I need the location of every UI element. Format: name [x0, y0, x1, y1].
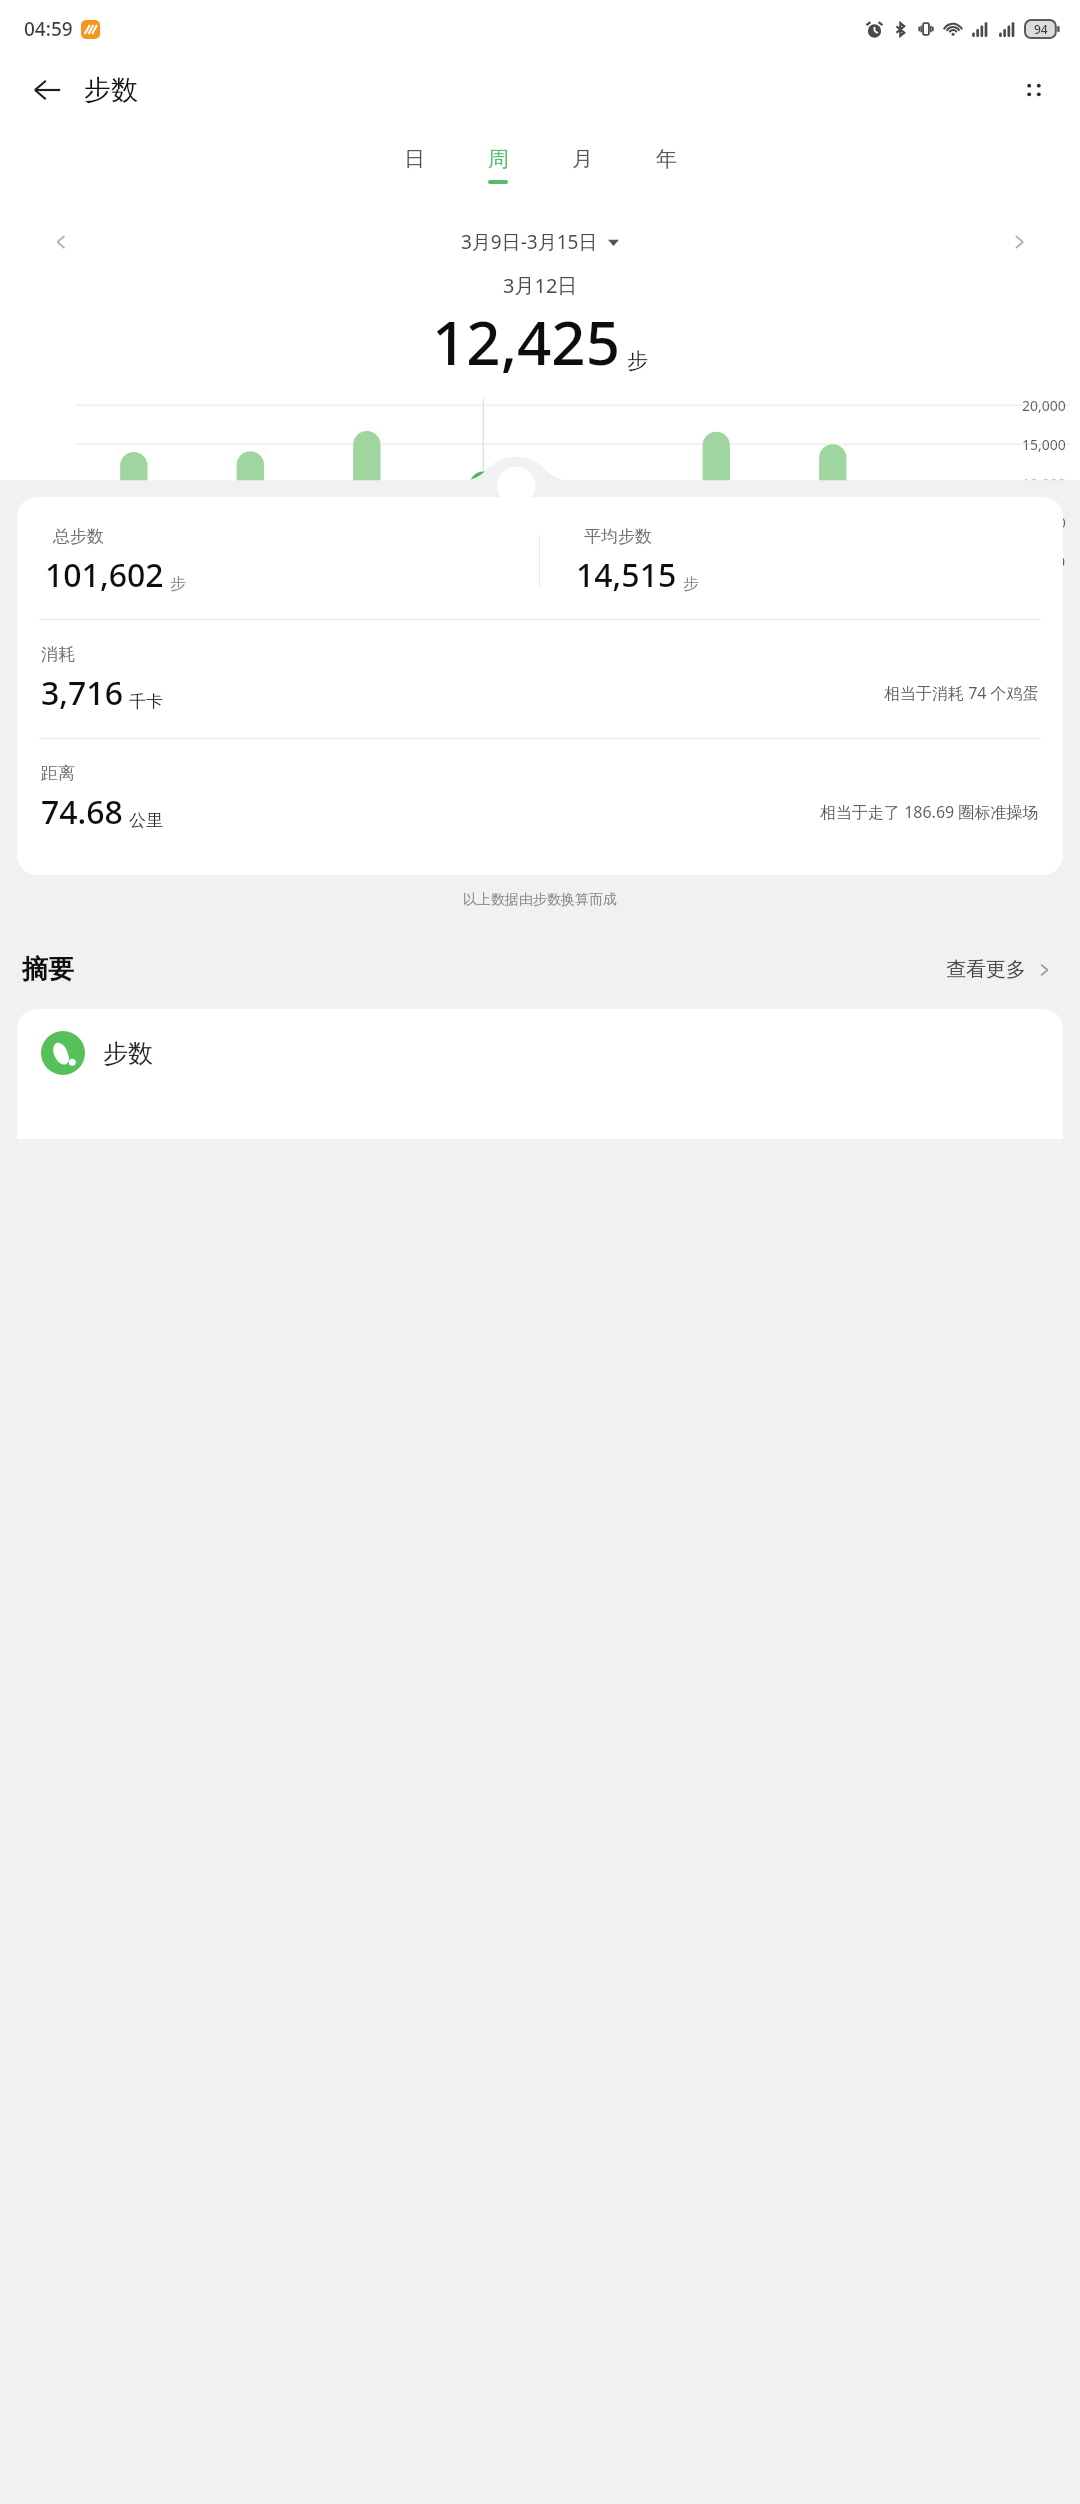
- staticText: 步数: [103, 1038, 153, 1069]
- button[interactable]: Previous week: [40, 221, 82, 263]
- staticText: 公里: [129, 810, 163, 831]
- staticText: 14,515: [576, 553, 677, 597]
- staticText: 相当于消耗 74 个鸡蛋: [884, 682, 1039, 704]
- button[interactable]: 步数: [17, 1009, 1063, 1139]
- staticText: 步: [170, 574, 186, 594]
- button[interactable]: 查看更多: [942, 949, 1058, 990]
- staticText: 3,716: [41, 671, 123, 715]
- staticText: 5,000: [1030, 513, 1066, 532]
- staticText: 千卡: [129, 691, 163, 712]
- button[interactable]: 月: [553, 142, 611, 188]
- staticText: 年: [656, 146, 677, 172]
- staticText: 步: [683, 574, 699, 594]
- button[interactable]: 周: [469, 142, 527, 188]
- button[interactable]: 年: [637, 142, 695, 188]
- button[interactable]: 日: [385, 142, 443, 188]
- button[interactable]: 3月9日-3月15日: [451, 224, 629, 260]
- staticText: 周五: [604, 577, 634, 596]
- staticText: 10,000: [1022, 474, 1066, 493]
- staticText: 相当于走了 186.69 圈标准操场: [820, 801, 1039, 823]
- button[interactable]: 距离: [17, 739, 1063, 857]
- staticText: 3月9日-3月15日: [461, 229, 598, 255]
- staticText: 94: [1034, 21, 1048, 37]
- staticText: 0: [1057, 552, 1066, 571]
- staticText: 04:59: [24, 16, 73, 42]
- staticText: 总步数: [53, 526, 104, 547]
- staticText: 步: [627, 348, 648, 374]
- staticText: 74.68: [41, 790, 123, 834]
- staticText: 12,425: [432, 301, 620, 383]
- staticText: 3月12日: [503, 272, 578, 299]
- button[interactable]: More options: [1012, 68, 1056, 112]
- staticText: 月: [572, 146, 593, 172]
- staticText: 查看更多: [946, 957, 1026, 982]
- button[interactable]: Next week: [998, 221, 1040, 263]
- button[interactable]: Back: [28, 69, 142, 111]
- staticText: 101,602: [45, 553, 164, 597]
- staticText: 周二: [178, 588, 208, 607]
- staticText: 20,000: [1022, 396, 1066, 415]
- staticText: 15,000: [1022, 435, 1066, 454]
- button[interactable]: 消耗: [17, 620, 1063, 738]
- staticText: 距离: [41, 763, 75, 784]
- staticText: 步数: [84, 73, 138, 107]
- staticText: 以上数据由步数换算而成: [0, 891, 1080, 909]
- staticText: 3/9: [40, 566, 62, 585]
- staticText: 平均步数: [584, 526, 652, 547]
- staticText: 日: [404, 146, 425, 172]
- staticText: 周: [488, 146, 509, 172]
- staticText: 消耗: [41, 644, 75, 665]
- staticText: 摘要: [22, 953, 74, 986]
